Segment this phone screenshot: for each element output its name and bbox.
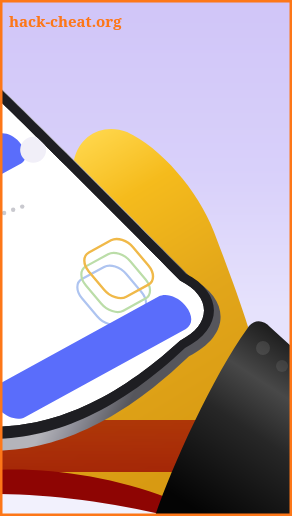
staticText: hack-cheat.org xyxy=(9,11,122,31)
